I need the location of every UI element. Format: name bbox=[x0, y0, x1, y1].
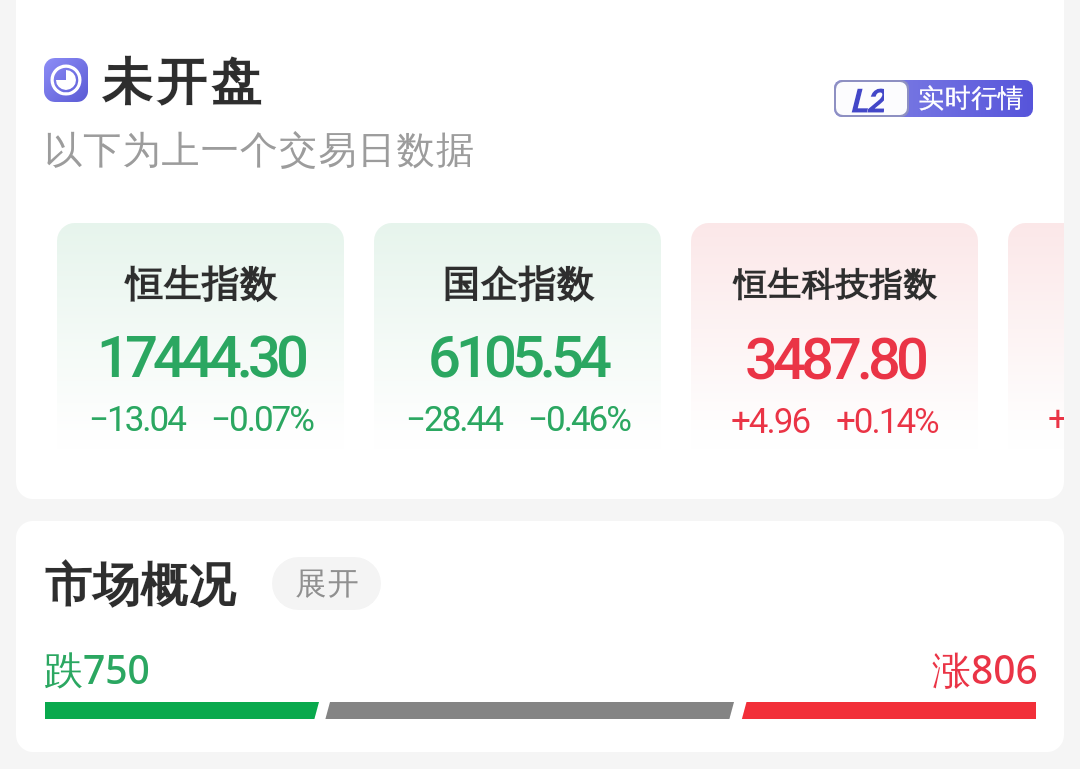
staticText: 涨806 bbox=[932, 642, 1038, 695]
button[interactable]: 展开 bbox=[272, 557, 381, 610]
staticText: +0.14% bbox=[836, 401, 938, 442]
staticText: 国企指数 bbox=[442, 261, 594, 308]
staticText: 以下为上一个交易日数据 bbox=[44, 126, 476, 174]
staticText: L2 bbox=[850, 82, 884, 115]
staticText: 市场概况 bbox=[44, 556, 236, 615]
staticText: +8.12 bbox=[1048, 399, 1064, 440]
staticText: 展开 bbox=[295, 564, 359, 603]
staticText: 6105.54 bbox=[428, 323, 607, 391]
staticText: 恒生指数 bbox=[125, 261, 277, 308]
button[interactable]: 恒生指数 bbox=[57, 223, 344, 463]
staticText: 恒生科技指数 bbox=[733, 264, 937, 306]
staticText: 实时行情 bbox=[918, 82, 1024, 115]
other: 市场状态 bbox=[44, 58, 88, 102]
staticText: 17444.30 bbox=[97, 323, 304, 391]
button[interactable]: 国企指数 bbox=[374, 223, 661, 463]
button[interactable]: L2 bbox=[834, 80, 1033, 117]
staticText: −13.04 bbox=[89, 399, 185, 440]
staticText: −28.44 bbox=[406, 399, 502, 440]
staticText: 3487.80 bbox=[745, 325, 924, 393]
button[interactable]: 红筹指数 bbox=[1008, 223, 1064, 463]
staticText: −0.46% bbox=[528, 399, 630, 440]
staticText: +4.96 bbox=[731, 401, 810, 442]
staticText: −0.07% bbox=[211, 399, 313, 440]
button[interactable]: 恒生科技指数 bbox=[691, 223, 978, 463]
staticText: 跌750 bbox=[44, 642, 150, 695]
staticText: 未开盘 bbox=[102, 51, 266, 114]
